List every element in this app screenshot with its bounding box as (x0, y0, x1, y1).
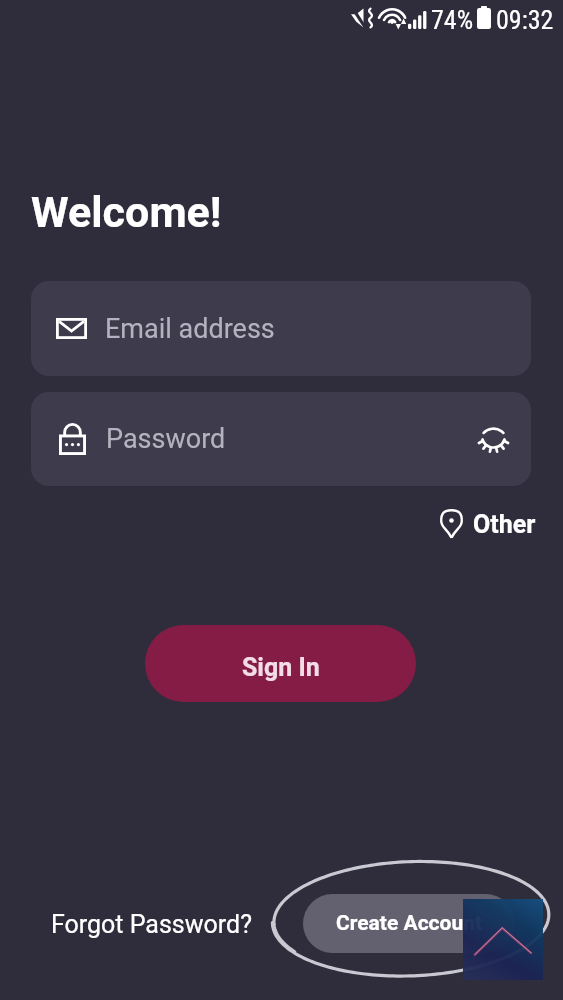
staticText: Sign In (242, 653, 320, 682)
button[interactable]: Password (31, 392, 531, 486)
staticText: Other (473, 510, 536, 539)
staticText: Create Account (336, 911, 483, 936)
button[interactable]: Sign In (145, 625, 416, 702)
button[interactable]: Other (434, 502, 538, 546)
staticText: 09:32 (496, 5, 554, 35)
staticText: 74% (431, 5, 474, 35)
other: Email (56, 318, 87, 339)
button[interactable]: Create Account (303, 894, 515, 953)
button[interactable]: Email (31, 281, 531, 376)
button[interactable]: Toggle password visibility (469, 415, 517, 463)
staticText: Password (106, 423, 226, 455)
staticText: Welcome! (31, 187, 222, 237)
button[interactable]: Forgot Password? (51, 910, 252, 939)
other: Password (59, 424, 86, 455)
staticText: Email address (105, 313, 275, 345)
